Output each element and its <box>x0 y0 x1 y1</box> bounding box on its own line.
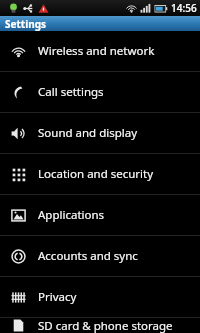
staticText: Sound and display <box>38 125 138 141</box>
other: Accounts and sync <box>9 247 27 265</box>
other: SD card & phone storage <box>9 318 27 333</box>
staticText: Applications <box>38 207 105 223</box>
other: Applications <box>9 206 27 224</box>
other: Sound and display <box>9 124 27 142</box>
staticText: Settings <box>5 17 46 31</box>
other: Call settings <box>9 83 27 101</box>
other: Privacy <box>9 288 27 306</box>
staticText: Call settings <box>38 84 104 100</box>
staticText: Privacy <box>38 289 77 305</box>
button[interactable]: Wireless and network <box>0 31 200 71</box>
staticText: Wireless and network <box>38 43 155 59</box>
staticText: 14:56 <box>171 1 197 15</box>
button[interactable]: Privacy <box>0 277 200 317</box>
staticText: Accounts and sync <box>38 248 138 264</box>
button[interactable]: SD card & phone storage <box>0 318 200 333</box>
staticText: Location and security <box>38 166 154 182</box>
button[interactable]: Applications <box>0 195 200 235</box>
button[interactable]: Location and security <box>0 154 200 194</box>
button[interactable]: Call settings <box>0 72 200 112</box>
staticText: SD card & phone storage <box>38 318 173 333</box>
button[interactable]: Sound and display <box>0 113 200 153</box>
other: Wireless and network <box>9 42 27 60</box>
button[interactable]: Accounts and sync <box>0 236 200 276</box>
other: Location and security <box>9 165 27 183</box>
